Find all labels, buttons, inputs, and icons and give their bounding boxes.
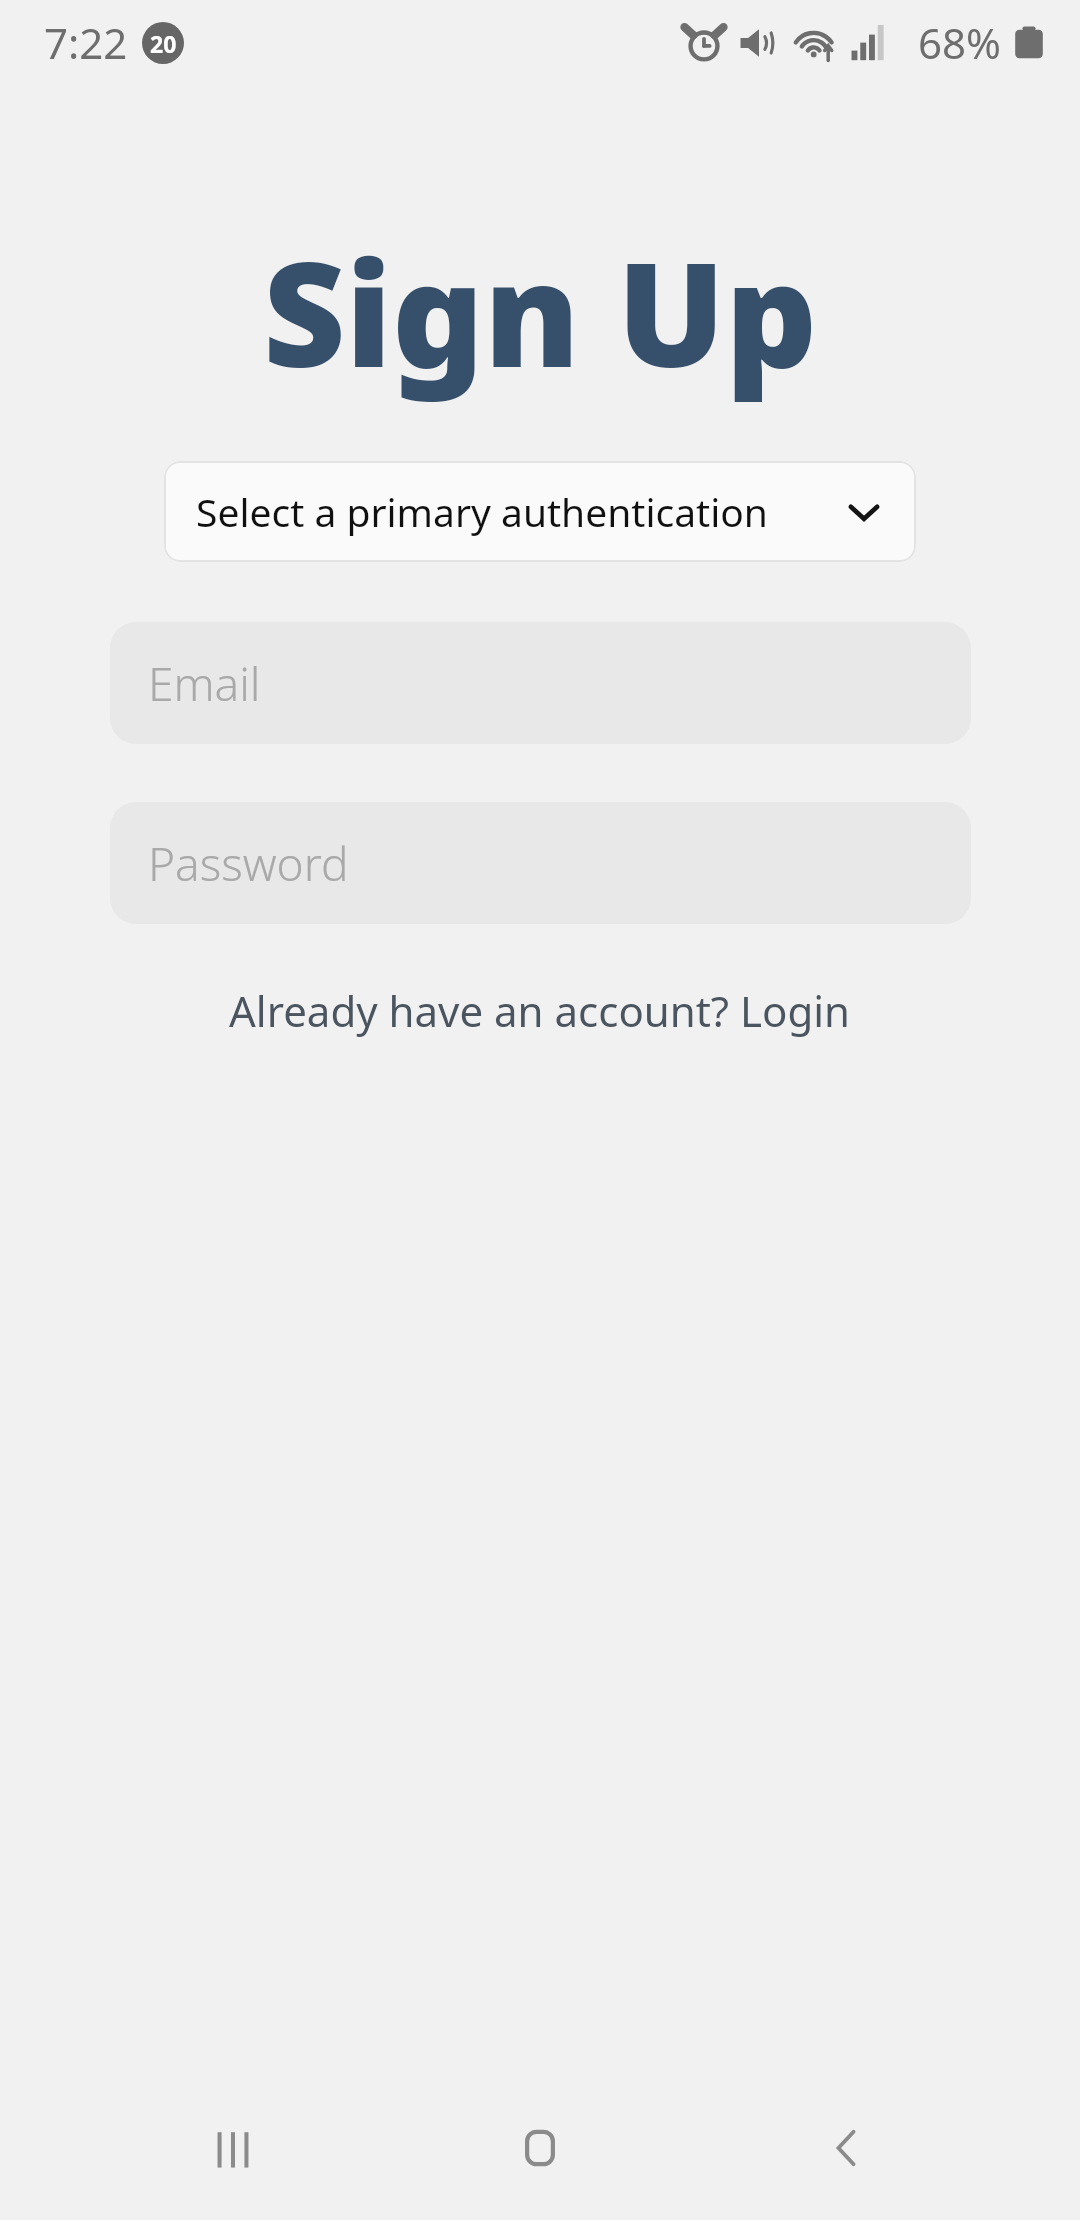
button[interactable]: Select a primary authentication method bbox=[164, 461, 916, 562]
button[interactable]: Back bbox=[773, 2082, 923, 2220]
button[interactable]: Home bbox=[465, 2082, 615, 2220]
staticText: Sign Up bbox=[263, 214, 818, 409]
staticText: 20 bbox=[150, 28, 177, 59]
button[interactable]: Already have an account? Login bbox=[213, 974, 867, 1047]
button[interactable]: Email bbox=[110, 622, 971, 744]
button[interactable]: Recent apps bbox=[158, 2082, 308, 2220]
staticText: Select a primary authentication method bbox=[196, 485, 844, 538]
staticText: 68% bbox=[918, 14, 1001, 71]
button[interactable]: Password bbox=[110, 802, 971, 924]
staticText: 7:22 bbox=[44, 14, 128, 71]
staticText: Email bbox=[148, 652, 261, 715]
staticText: Password bbox=[148, 832, 349, 895]
staticText: Already have an account? Login bbox=[229, 982, 851, 1039]
